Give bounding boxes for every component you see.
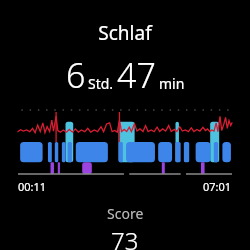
staticText: 73 [111, 224, 139, 250]
staticText: 00:11 [18, 179, 47, 194]
staticText: 47 [117, 52, 156, 98]
staticText: Std. [88, 74, 114, 93]
staticText: Schlaf [98, 20, 152, 46]
staticText: Score [107, 204, 144, 223]
staticText: 6 [66, 52, 86, 98]
button[interactable]: Score [0, 204, 250, 250]
staticText: 07:01 [203, 179, 232, 194]
staticText: min [159, 74, 185, 93]
button[interactable]: Sleep stages chart [18, 106, 232, 178]
